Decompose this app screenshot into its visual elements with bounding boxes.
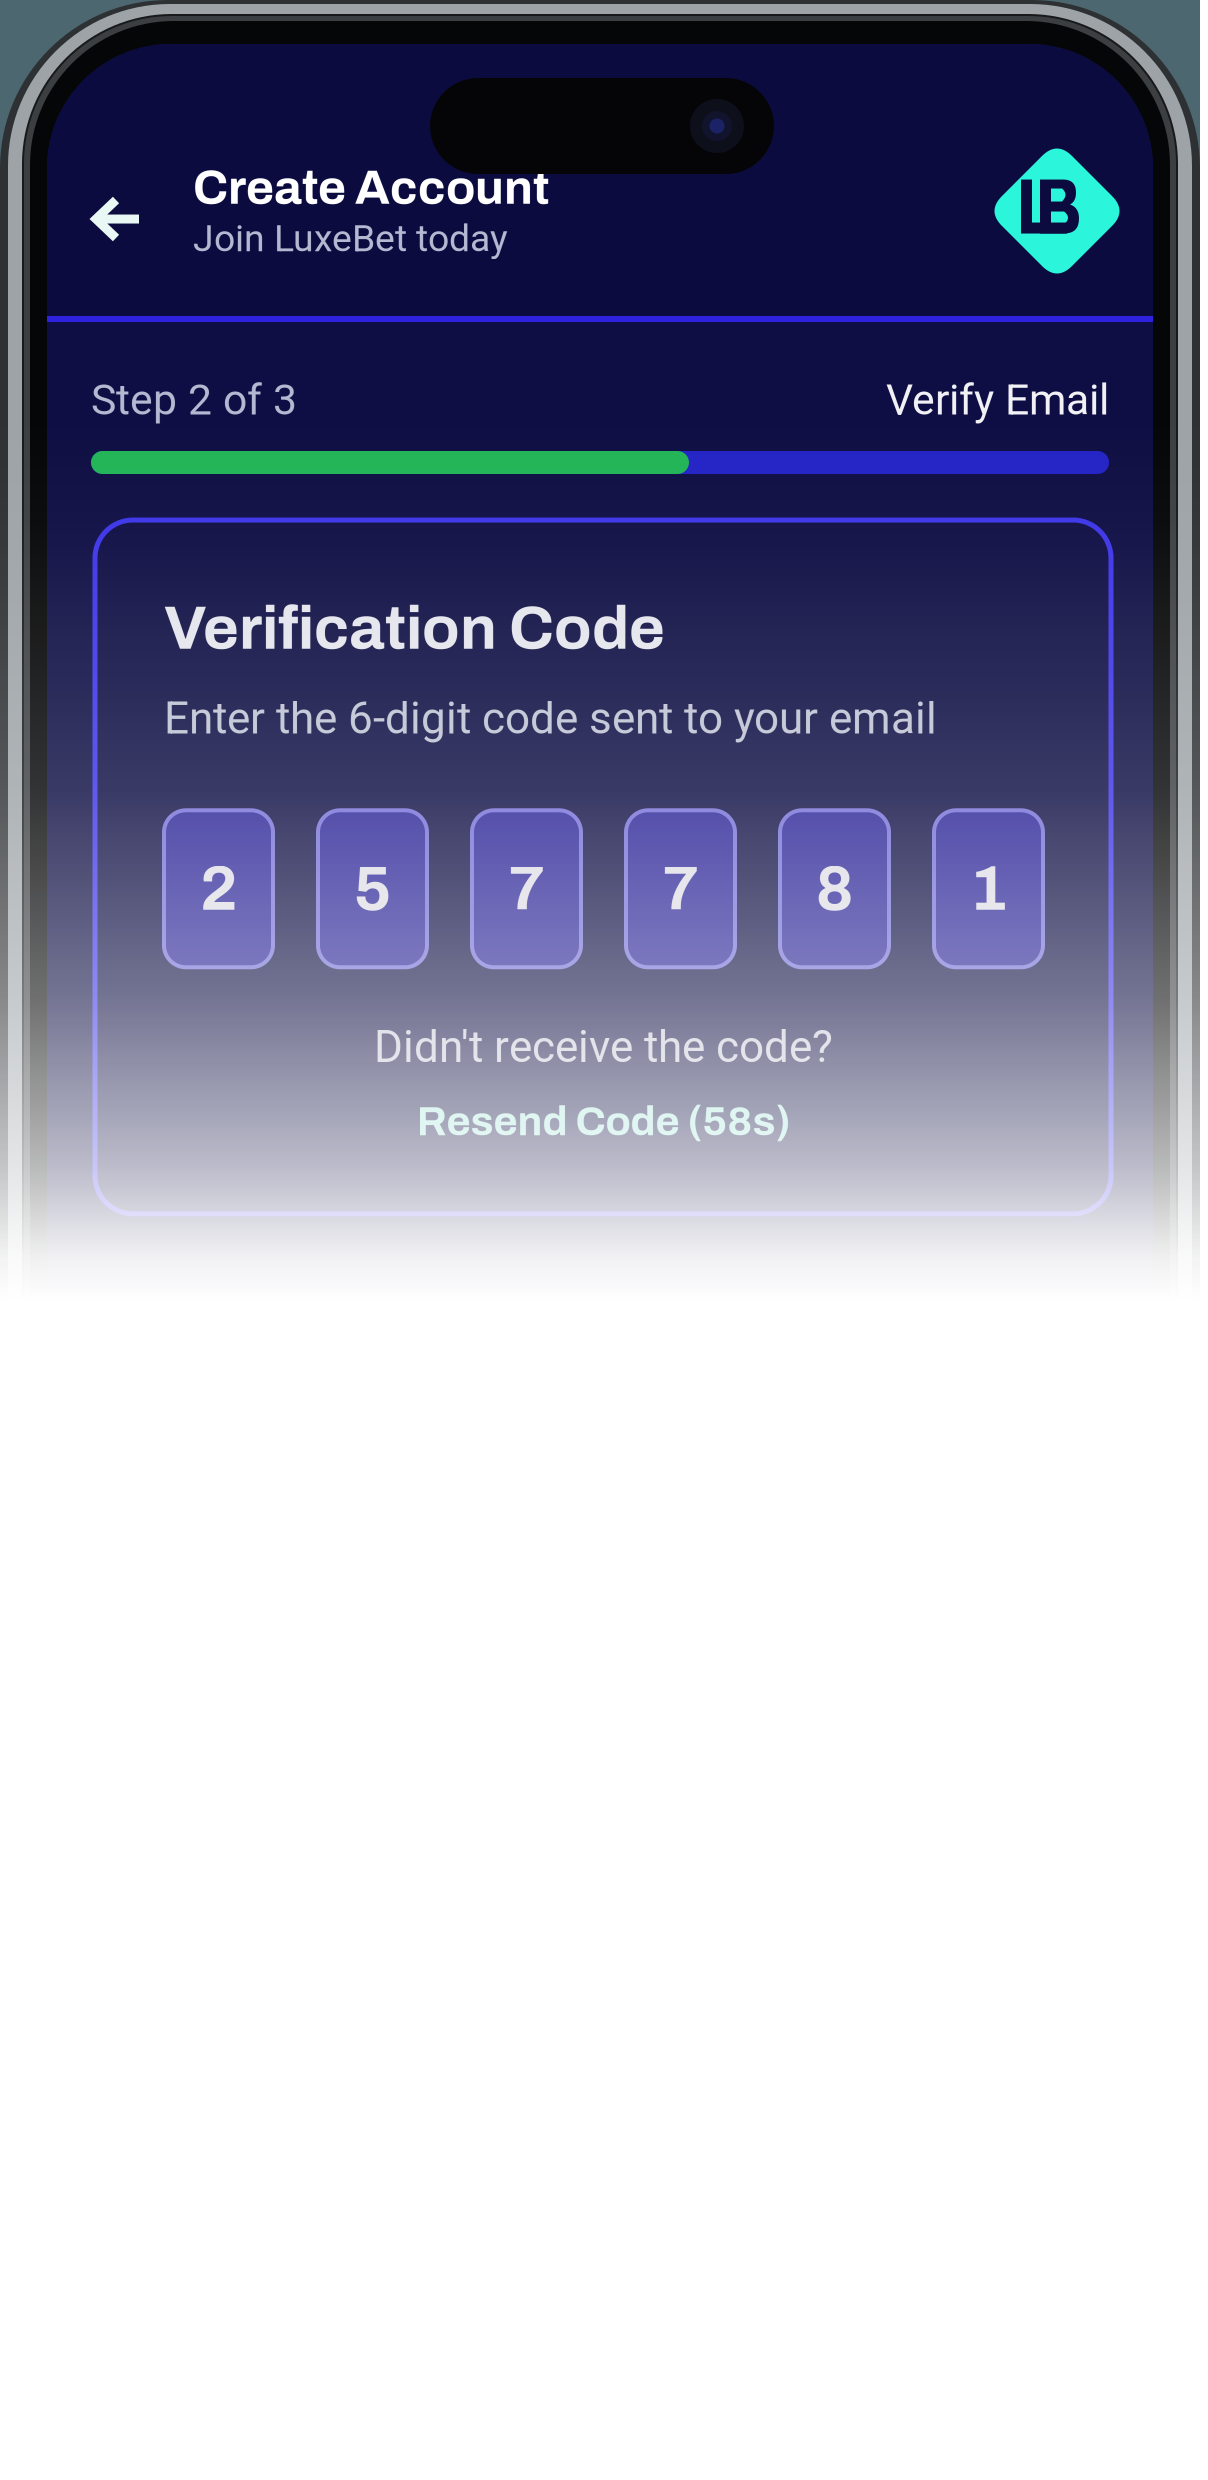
button[interactable]: Back (91, 180, 144, 242)
staticText: Verification Code (164, 595, 665, 662)
button[interactable]: LuxeBet (985, 138, 1129, 284)
staticText: 5 (354, 855, 391, 923)
staticText: 7 (508, 855, 545, 923)
staticText: Didn't receive the code? (374, 1021, 833, 1073)
staticText: 1 (970, 855, 1007, 923)
staticText: 2 (200, 855, 237, 923)
staticText: 8 (816, 855, 853, 923)
staticText: Step 2 of 3 (91, 375, 297, 425)
staticText: Create Account (193, 161, 549, 214)
staticText: Verify Email (886, 375, 1109, 425)
button[interactable]: Resend Code (58s) (416, 1099, 790, 1144)
staticText: 7 (662, 855, 699, 923)
staticText: Join LuxeBet today (193, 217, 508, 260)
staticText: Resend Code (58s) (416, 1099, 790, 1144)
staticText: Enter the 6-digit code sent to your emai… (164, 693, 937, 744)
